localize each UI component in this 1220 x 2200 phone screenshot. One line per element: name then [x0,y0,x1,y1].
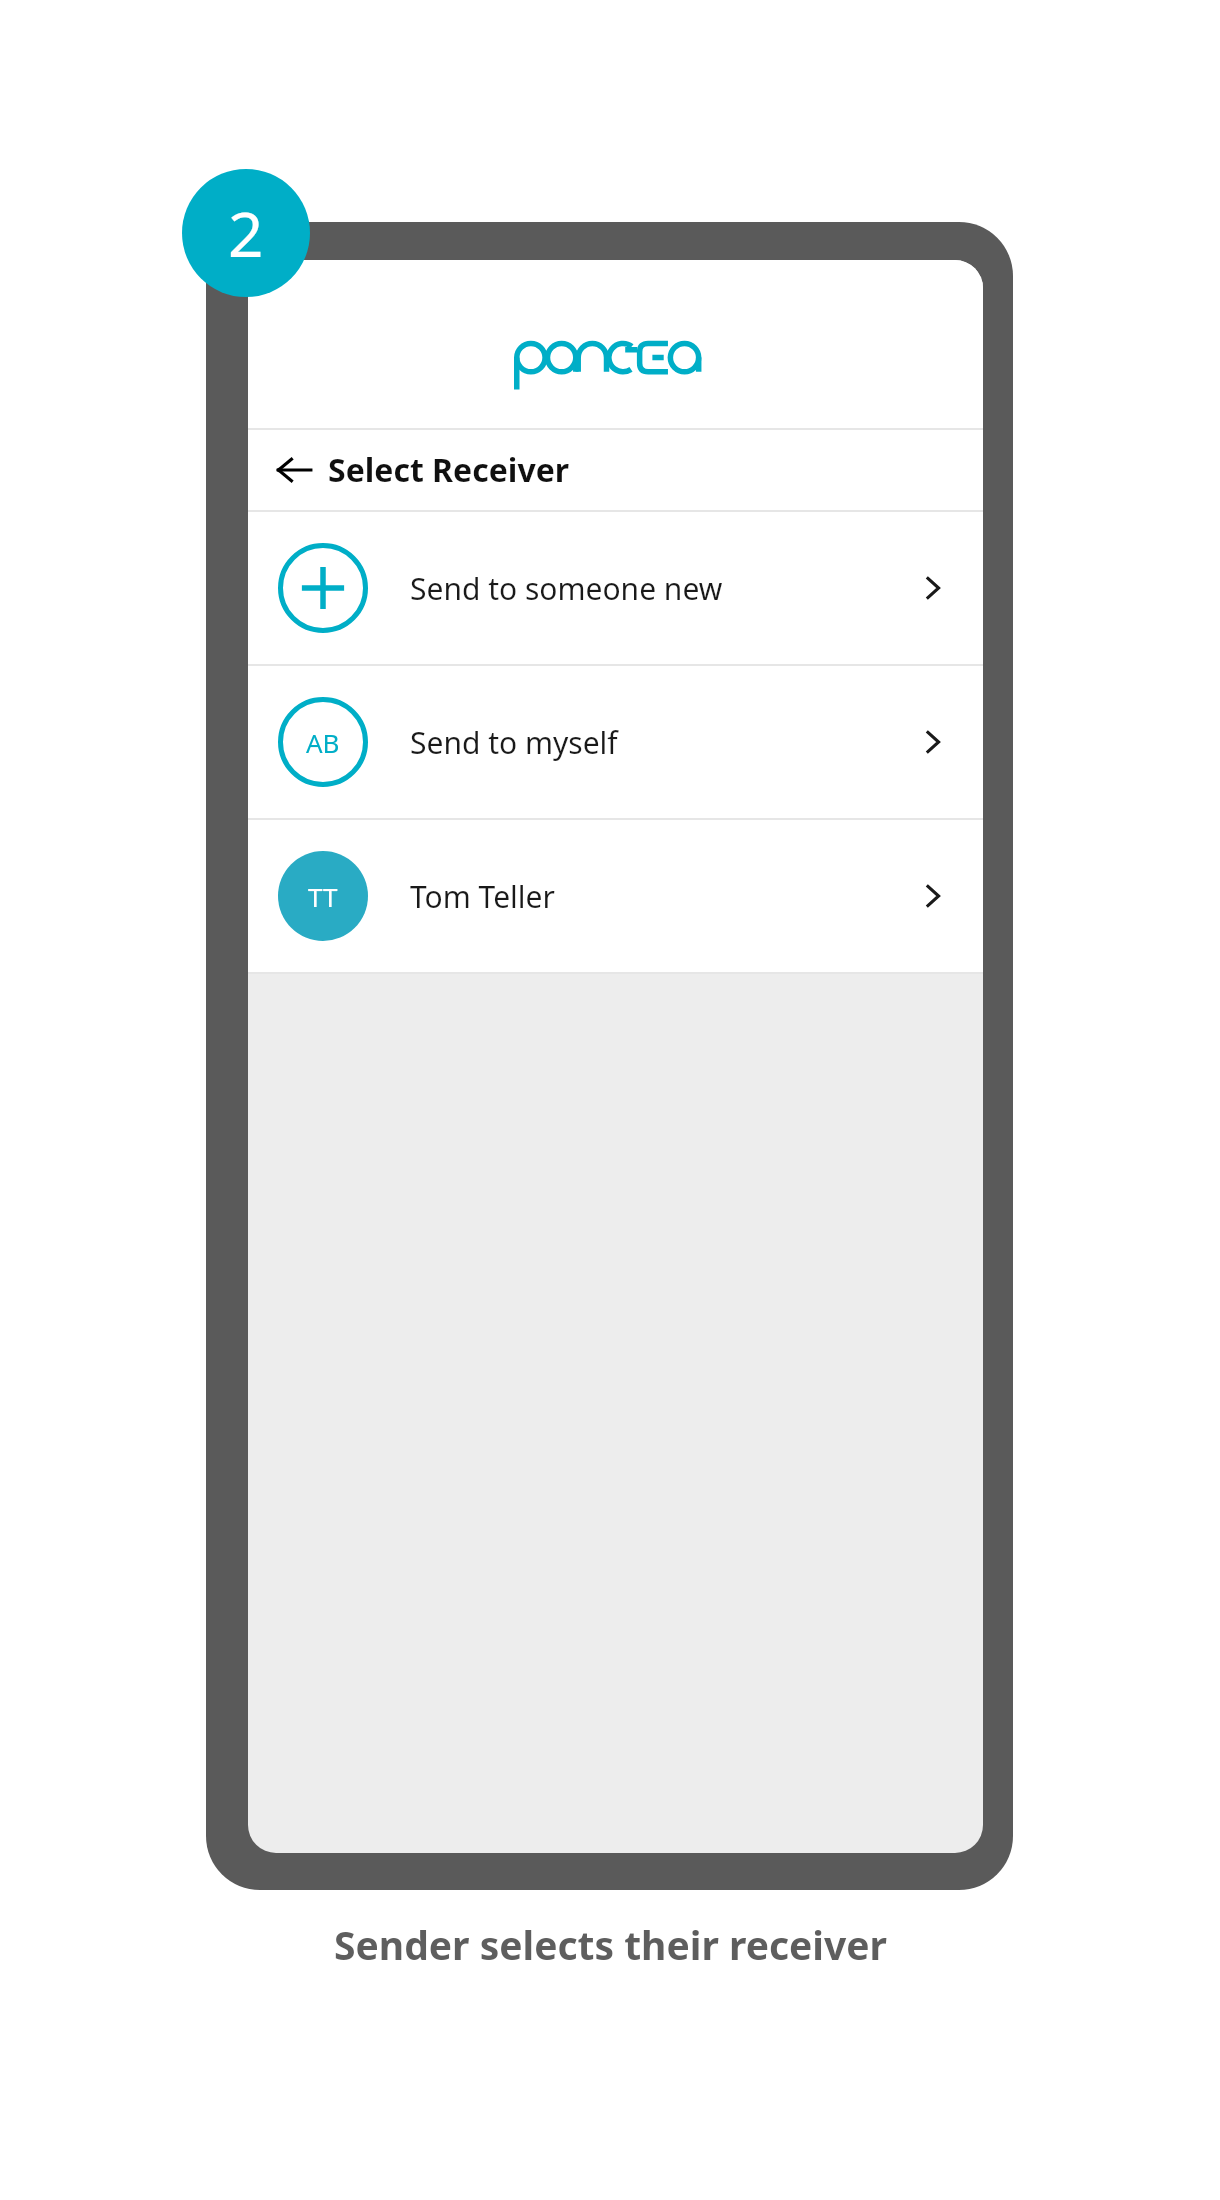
button[interactable]: AB [248,666,983,818]
staticText: Send to someone new [410,568,723,609]
staticText: Sender selects their receiver [334,1918,887,1971]
staticText: 2 [228,191,264,275]
button[interactable]: TT [248,820,983,972]
staticText: Select Receiver [328,448,570,492]
button[interactable]: Back [270,446,318,494]
staticText: Tom Teller [410,876,555,917]
staticText: Send to myself [410,722,618,763]
staticText: TT [308,879,338,914]
staticText: AB [306,725,340,760]
button[interactable]: Send to someone new [248,512,983,664]
